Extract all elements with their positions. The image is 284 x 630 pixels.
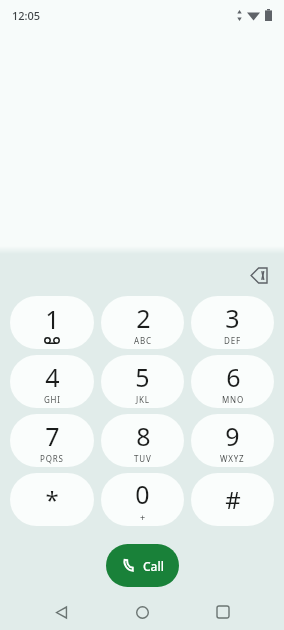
button[interactable]: Call (106, 544, 179, 587)
staticText: 4 (45, 360, 60, 394)
staticText: TUV (134, 453, 152, 464)
staticText: Call (143, 558, 164, 574)
staticText: 12:05 (12, 8, 41, 23)
button[interactable]: Backspace (238, 256, 276, 294)
button[interactable]: Recent apps (203, 594, 243, 630)
staticText: GHI (44, 394, 61, 405)
button[interactable]: 9 (191, 414, 274, 467)
staticText: 7 (45, 419, 60, 453)
staticText: 2 (136, 301, 151, 335)
staticText: # (225, 483, 241, 516)
button[interactable]: * (10, 473, 94, 526)
staticText: 3 (225, 301, 240, 335)
staticText: 0 (135, 477, 150, 511)
button[interactable]: 1 (10, 296, 94, 349)
button[interactable]: 7 (10, 414, 94, 467)
button[interactable]: Back (41, 594, 81, 630)
button[interactable]: 2 (101, 296, 184, 349)
button[interactable]: Home (122, 594, 162, 630)
staticText: 6 (226, 360, 241, 394)
staticText: DEF (224, 335, 241, 346)
staticText: 1 (45, 302, 60, 336)
staticText: MNO (222, 394, 244, 405)
staticText: WXYZ (220, 453, 245, 464)
button[interactable]: # (191, 473, 274, 526)
staticText: PQRS (40, 453, 64, 464)
button[interactable]: 8 (101, 414, 184, 467)
button[interactable]: 3 (191, 296, 274, 349)
button[interactable]: 6 (191, 355, 274, 408)
button[interactable]: 0 (101, 473, 184, 526)
staticText: + (140, 511, 146, 523)
staticText: 8 (136, 419, 151, 453)
staticText: ABC (134, 335, 152, 346)
button[interactable]: 5 (101, 355, 184, 408)
staticText: 9 (225, 419, 240, 453)
staticText: 5 (135, 360, 150, 394)
button[interactable]: 4 (10, 355, 94, 408)
staticText: JKL (136, 394, 150, 405)
staticText: * (45, 483, 59, 516)
